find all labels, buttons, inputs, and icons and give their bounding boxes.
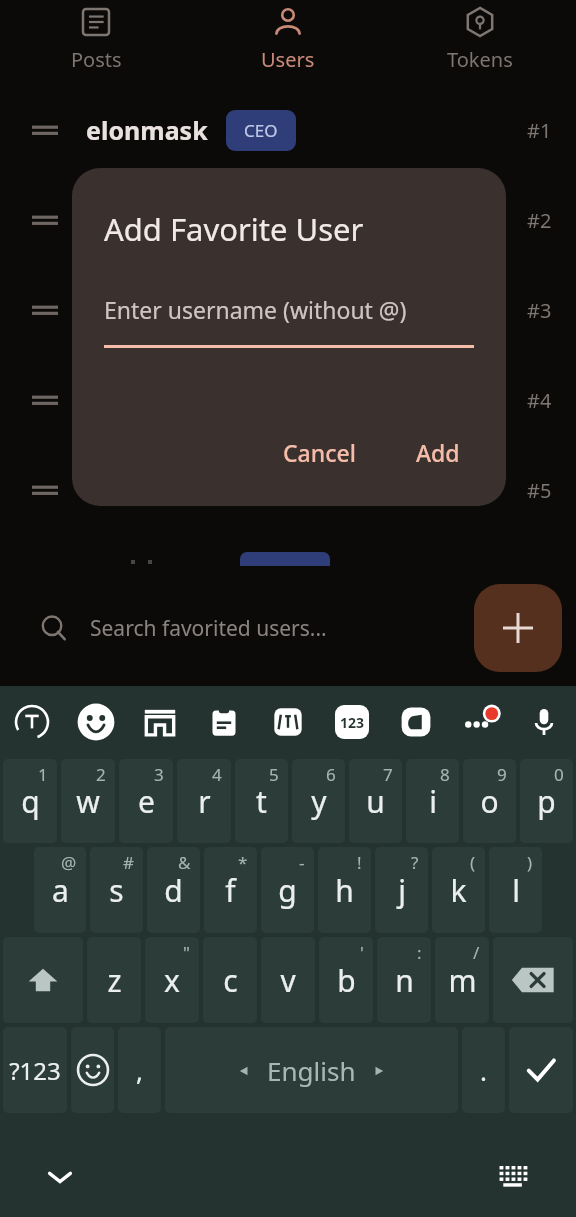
staticText: y — [311, 781, 327, 822]
button[interactable]: j — [375, 847, 428, 933]
staticText: g — [278, 870, 297, 911]
button[interactable]: gboard — [384, 686, 448, 757]
staticText: k — [450, 870, 467, 911]
staticText: 2 — [96, 763, 106, 786]
button[interactable]: store — [128, 686, 192, 757]
button[interactable]: l — [489, 847, 542, 933]
button[interactable]: c — [203, 937, 257, 1023]
staticText: c — [223, 960, 238, 1001]
button[interactable]: clipboard — [192, 686, 256, 757]
staticText: , — [136, 1053, 143, 1088]
button[interactable]: x — [145, 937, 199, 1023]
button[interactable]: a — [34, 847, 86, 933]
button[interactable]: . — [462, 1027, 505, 1113]
button[interactable]: Backspace — [493, 937, 573, 1023]
staticText: p — [537, 781, 556, 822]
staticText: w — [76, 781, 100, 822]
staticText: ( — [470, 851, 476, 874]
button[interactable]: t — [235, 759, 288, 843]
staticText: # — [123, 851, 134, 874]
staticText: 7 — [383, 763, 393, 786]
button[interactable]: mic — [512, 686, 576, 757]
staticText: i — [429, 781, 437, 822]
staticText: CEO — [244, 119, 278, 142]
button[interactable]: Space — [165, 1027, 458, 1113]
staticText: v — [280, 960, 296, 1001]
button[interactable]: ?123 — [3, 1027, 67, 1113]
other: Reorder — [32, 213, 58, 227]
button[interactable]: b — [319, 937, 373, 1023]
staticText: 0 — [554, 763, 564, 786]
button[interactable]: g — [261, 847, 314, 933]
staticText: 5 — [269, 763, 279, 786]
button[interactable]: emoji — [64, 686, 128, 757]
button[interactable]: Posts — [0, 0, 192, 84]
button[interactable]: Add favorite user — [474, 584, 562, 672]
button[interactable]: Emoji — [71, 1027, 114, 1113]
button[interactable]: Users — [192, 0, 384, 84]
button[interactable]: Reorder — [0, 372, 576, 428]
staticText: English — [267, 1053, 356, 1088]
button[interactable]: q — [3, 759, 57, 843]
staticText: #5 — [527, 477, 552, 504]
button[interactable]: i — [406, 759, 459, 843]
button[interactable]: m — [435, 937, 489, 1023]
staticText: m — [448, 960, 477, 1001]
button[interactable]: r — [177, 759, 231, 843]
button[interactable]: , — [118, 1027, 161, 1113]
button[interactable]: Reorder — [0, 282, 576, 338]
staticText: #4 — [527, 387, 552, 414]
button[interactable]: Reorder — [0, 192, 576, 248]
button[interactable]: d — [147, 847, 200, 933]
button[interactable]: Enter — [509, 1027, 573, 1113]
button[interactable]: Tokens — [384, 0, 576, 84]
button[interactable]: Reorder — [0, 102, 576, 158]
button[interactable]: s — [90, 847, 143, 933]
staticText: #1 — [527, 117, 552, 144]
staticText: 123 — [340, 713, 365, 732]
staticText: u — [366, 781, 385, 822]
button[interactable]: k — [432, 847, 485, 933]
button[interactable]: Add — [402, 429, 474, 476]
button[interactable]: Search — [0, 590, 576, 666]
button[interactable]: e — [119, 759, 173, 843]
button[interactable]: Reorder — [0, 462, 576, 518]
button[interactable]: Hide keyboard — [36, 1153, 84, 1201]
other: Search — [40, 614, 68, 642]
button[interactable]: h — [318, 847, 371, 933]
staticText: " — [183, 941, 190, 964]
button[interactable]: more — [448, 686, 512, 757]
button[interactable]: Cancel — [269, 429, 370, 476]
staticText: r — [198, 781, 211, 822]
button[interactable]: Switch keyboard — [488, 1151, 540, 1203]
staticText: 6 — [326, 763, 336, 786]
staticText: . — [480, 1053, 487, 1088]
button[interactable]: v — [261, 937, 315, 1023]
staticText: Add Favorite User — [104, 208, 364, 250]
button[interactable]: w — [61, 759, 115, 843]
staticText: Tokens — [447, 46, 513, 73]
button[interactable]: o — [463, 759, 516, 843]
staticText: elonmask — [86, 113, 208, 147]
button[interactable]: y — [292, 759, 345, 843]
staticText: 4 — [212, 763, 222, 786]
staticText: 8 — [440, 763, 450, 786]
staticText: t — [256, 781, 267, 822]
staticText: e — [138, 781, 155, 822]
button[interactable]: z — [87, 937, 141, 1023]
staticText: 1 — [38, 763, 48, 786]
button[interactable]: u — [349, 759, 402, 843]
button[interactable]: translate — [0, 686, 64, 757]
button[interactable]: n — [377, 937, 431, 1023]
staticText: ? — [411, 851, 419, 874]
button[interactable]: Shift — [3, 937, 83, 1023]
staticText: a — [52, 870, 69, 911]
staticText: Search favorited users... — [90, 614, 327, 643]
button[interactable]: p — [520, 759, 573, 843]
staticText: n — [395, 960, 414, 1001]
staticText: f — [225, 870, 236, 911]
button[interactable]: textedit — [256, 686, 320, 757]
staticText: Users — [261, 46, 315, 73]
button[interactable]: f — [204, 847, 257, 933]
button[interactable]: 123 — [320, 686, 384, 757]
